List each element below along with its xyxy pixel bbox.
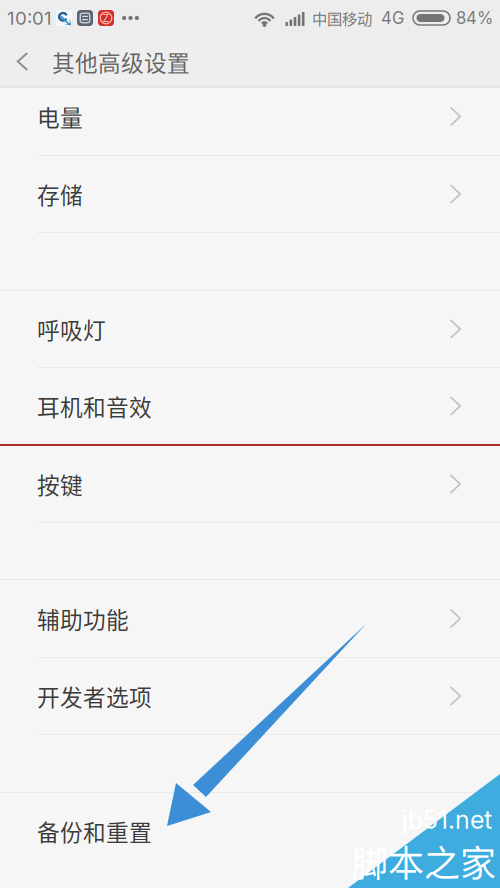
staticText: 开发者选项: [37, 680, 152, 712]
button[interactable]: 开发者选项: [0, 658, 500, 734]
button[interactable]: 备份和重置: [0, 793, 500, 869]
staticText: 脚本之家: [352, 835, 496, 887]
button[interactable]: 电量: [0, 88, 500, 155]
button[interactable]: 呼吸灯: [0, 291, 500, 367]
button[interactable]: 耳机和音效: [0, 368, 500, 444]
button[interactable]: 返回: [0, 36, 45, 87]
staticText: 耳机和音效: [37, 390, 152, 422]
button[interactable]: 存储: [0, 156, 500, 232]
staticText: 中国移动: [312, 7, 372, 29]
staticText: 存储: [37, 178, 83, 210]
button[interactable]: 辅助功能: [0, 580, 500, 657]
staticText: 按键: [37, 468, 83, 500]
staticText: 其他高级设置: [52, 45, 190, 78]
staticText: 备份和重置: [37, 815, 152, 847]
staticText: 10:01: [7, 7, 52, 29]
staticText: 呼吸灯: [37, 313, 106, 345]
staticText: 辅助功能: [37, 602, 129, 635]
button[interactable]: 按键: [0, 446, 500, 522]
staticText: 84%: [456, 8, 493, 28]
staticText: 4G: [381, 8, 404, 28]
staticText: 电量: [37, 100, 83, 133]
staticText: Z: [102, 11, 109, 24]
staticText: jb51.net: [402, 804, 492, 835]
